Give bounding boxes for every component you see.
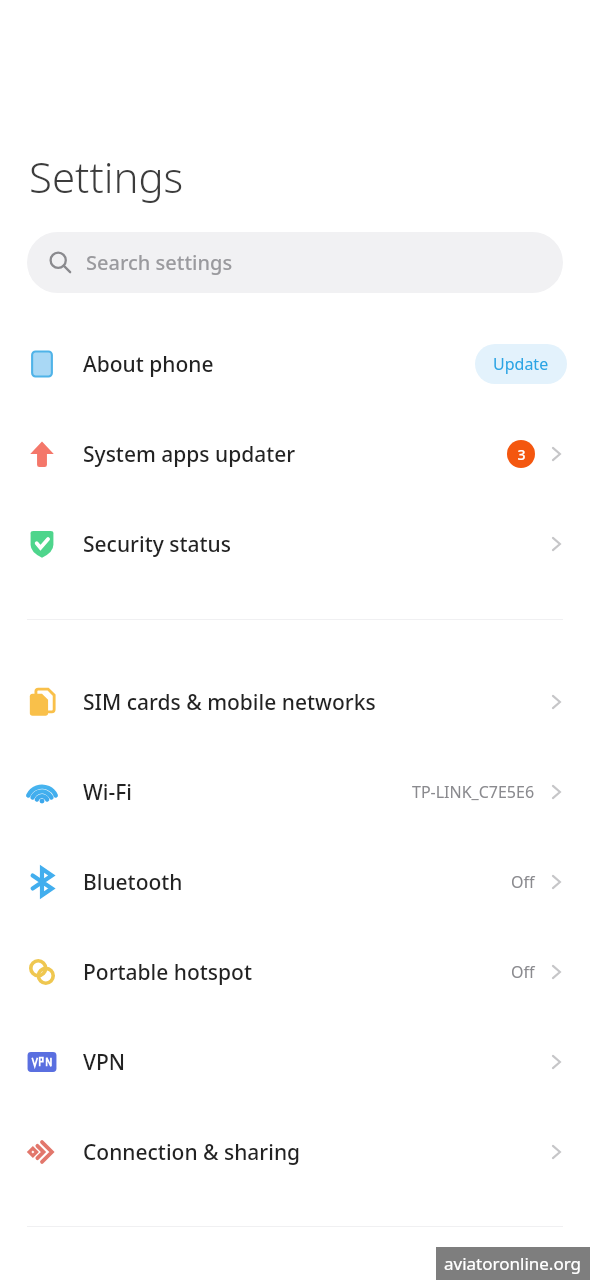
button[interactable]: VPN [0,1017,590,1107]
staticText: System apps updater [83,440,507,469]
staticText: Search settings [86,249,233,276]
button[interactable]: Connection and sharing [0,1107,590,1197]
staticText: VPN [83,1048,545,1077]
other: Connection and sharing [23,1133,61,1171]
button[interactable]: System apps updater [0,409,590,499]
button[interactable]: SIM cards and mobile networks [0,657,590,747]
other: Wi-Fi [23,773,61,811]
staticText: Settings [29,148,184,205]
staticText: Bluetooth [83,868,511,897]
staticText: 3 [517,445,526,464]
staticText: TP-LINK_C7E5E6 [412,781,535,803]
button[interactable]: Search [27,232,563,293]
staticText: Off [511,961,535,983]
staticText: Security status [83,530,545,559]
button[interactable]: Wi-Fi [0,747,590,837]
staticText: Off [511,871,535,893]
other: Search [49,251,72,274]
button[interactable]: About phone [0,319,590,409]
other: Portable hotspot [23,953,61,991]
button[interactable]: Bluetooth [0,837,590,927]
staticText: Wi-Fi [83,778,412,807]
other: System apps updater [23,435,61,473]
other: VPN [23,1043,61,1081]
other: Security status [23,525,61,563]
button[interactable]: Update [475,344,567,384]
other: About phone [23,345,61,383]
staticText: aviatoronline.org [444,1252,582,1275]
staticText: Connection & sharing [83,1138,545,1167]
button[interactable]: Security status [0,499,590,589]
button[interactable]: Portable hotspot [0,927,590,1017]
other: SIM cards and mobile networks [23,683,61,721]
staticText: About phone [83,350,475,379]
staticText: Update [493,353,549,375]
staticText: SIM cards & mobile networks [83,688,545,717]
staticText: Portable hotspot [83,958,511,987]
other: Bluetooth [23,863,61,901]
